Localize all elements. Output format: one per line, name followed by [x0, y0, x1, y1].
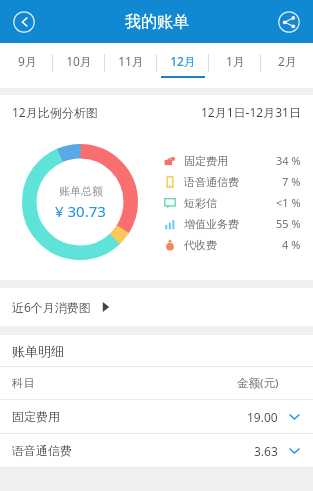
button[interactable]: 11月 [105, 43, 157, 88]
button[interactable]: 9月 [0, 43, 53, 88]
staticText: <1 % [276, 195, 301, 210]
staticText: 固定费用 [12, 409, 60, 424]
staticText: 12月1日-12月31日 [201, 104, 301, 120]
staticText: 4 % [282, 237, 301, 252]
staticText: 语音通信费 [184, 175, 239, 189]
staticText: 金额(元) [237, 375, 279, 391]
staticText: 12月比例分析图 [12, 104, 98, 120]
button[interactable]: Back [8, 6, 40, 38]
staticText: 55 % [276, 216, 301, 231]
staticText: 账单明细 [12, 343, 64, 359]
staticText: 科目 [12, 376, 35, 390]
staticText: 1月 [226, 53, 245, 69]
button[interactable]: 2月 [261, 43, 313, 88]
staticText: 我的账单 [125, 12, 189, 32]
staticText: 账单总额 [59, 184, 103, 198]
staticText: 7 % [282, 174, 301, 189]
staticText: 近6个月消费图 [12, 299, 91, 315]
staticText: 11月 [118, 53, 144, 69]
button[interactable]: 1月 [209, 43, 261, 88]
button[interactable]: 12月 [157, 43, 209, 88]
staticText: 代收费 [184, 238, 217, 252]
staticText: 短彩信 [184, 196, 217, 210]
staticText: 9月 [18, 53, 37, 69]
staticText: 19.00 [247, 409, 278, 425]
staticText: 2月 [278, 53, 297, 69]
staticText: 34 % [276, 153, 301, 168]
staticText: 语音通信费 [12, 443, 72, 458]
button[interactable]: Share [273, 6, 305, 38]
staticText: ¥ 30.73 [55, 201, 106, 221]
staticText: 增值业务费 [184, 217, 239, 231]
staticText: 10月 [66, 53, 92, 69]
button[interactable]: 近6个月消费图 [0, 288, 313, 326]
staticText: 12月 [170, 53, 196, 69]
staticText: 固定费用 [184, 154, 228, 168]
button[interactable]: 10月 [53, 43, 105, 88]
button[interactable]: 固定费用 [0, 400, 313, 433]
button[interactable]: 语音通信费 [0, 434, 313, 467]
staticText: 3.63 [254, 443, 278, 459]
